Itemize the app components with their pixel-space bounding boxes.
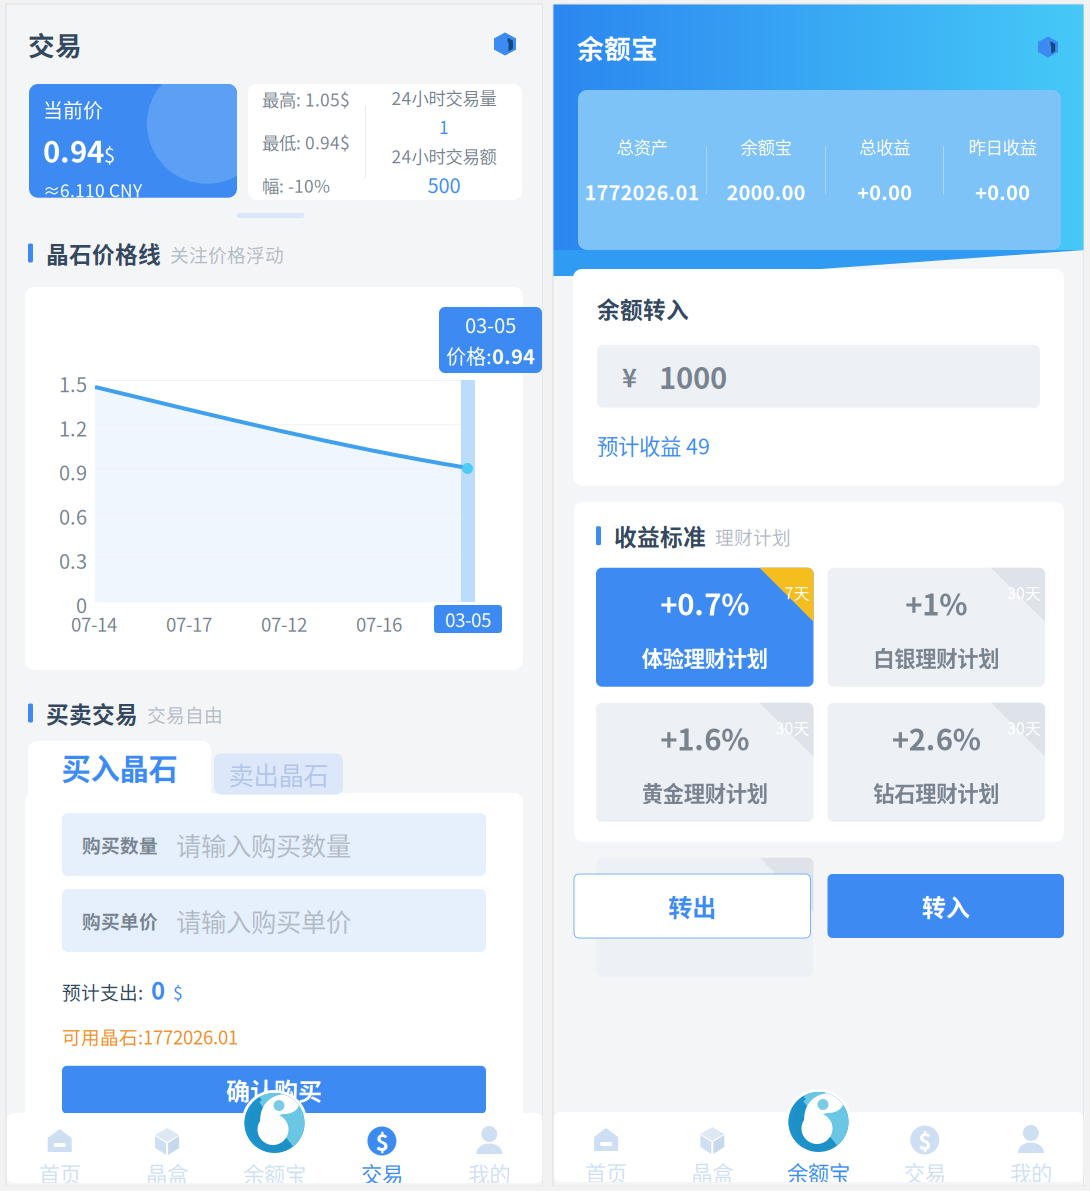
- staticText: 余额宝: [740, 134, 791, 159]
- staticText: 30天: [1007, 716, 1041, 739]
- staticText: 卖出晶石: [228, 756, 328, 792]
- staticText: 总收益: [859, 134, 910, 159]
- staticText: 07-16: [356, 610, 402, 637]
- staticText: +1.6%: [660, 716, 749, 759]
- staticText: 请输入购买单价: [176, 902, 351, 939]
- staticText: 确认购买: [226, 1072, 322, 1107]
- staticText: 24小时交易额: [391, 143, 496, 168]
- staticText: 买入晶石: [61, 746, 177, 788]
- button[interactable]: 确认购买: [62, 1066, 486, 1114]
- staticText: 首页: [585, 1157, 627, 1188]
- staticText: 交易: [361, 1158, 403, 1189]
- staticText: 可用晶石:1772026.01: [62, 1023, 238, 1050]
- staticText: 最高: 1.05$: [262, 86, 350, 111]
- button[interactable]: 我的: [436, 1113, 543, 1183]
- staticText: 黄金理财计划: [642, 777, 768, 808]
- staticText: 昨日收益: [968, 134, 1036, 159]
- staticText: 转入: [922, 889, 970, 923]
- button[interactable]: 晶盒: [659, 1112, 765, 1182]
- staticText: 理财计划: [715, 523, 791, 550]
- staticText: 晶石价格线: [46, 237, 161, 269]
- staticText: 幅: -10%: [262, 172, 330, 198]
- staticText: 1: [439, 114, 449, 139]
- staticText: +2.6%: [892, 716, 981, 759]
- staticText: 0.9: [59, 457, 87, 486]
- button[interactable]: +1%: [827, 568, 1045, 687]
- staticText: 0.3: [59, 546, 87, 575]
- button[interactable]: 首页: [553, 1112, 659, 1182]
- staticText: 转出: [668, 889, 716, 923]
- button[interactable]: +0.7%: [596, 568, 813, 687]
- staticText: 1.2: [59, 413, 87, 442]
- staticText: 购买单价: [82, 907, 158, 934]
- staticText: 余额宝: [243, 1158, 306, 1189]
- staticText: 晶盒: [691, 1157, 733, 1188]
- button[interactable]: +1.6%: [596, 703, 813, 822]
- staticText: 0.6: [59, 502, 87, 531]
- staticText: 1.5: [59, 369, 87, 398]
- staticText: 0.94: [43, 129, 104, 171]
- staticText: 收益标准: [614, 519, 706, 552]
- button[interactable]: 余额宝: [765, 1112, 872, 1182]
- staticText: 首页: [39, 1158, 81, 1189]
- staticText: 0.94: [492, 341, 535, 370]
- staticText: 关注价格浮动: [170, 240, 284, 267]
- staticText: 24小时交易量: [391, 85, 496, 110]
- staticText: 钻石理财计划: [873, 777, 999, 808]
- staticText: 晶盒: [146, 1158, 188, 1189]
- button[interactable]: 转入: [827, 874, 1064, 938]
- staticText: 买卖交易: [46, 697, 138, 729]
- staticText: 购买数量: [82, 831, 158, 858]
- staticText: 预计收益 49: [597, 430, 710, 461]
- button[interactable]: 首页: [6, 1113, 113, 1183]
- staticText: 请输入购买数量: [176, 826, 351, 863]
- staticText: 0: [76, 590, 87, 619]
- button[interactable]: 晶盒: [113, 1113, 221, 1183]
- staticText: 我的: [1010, 1157, 1052, 1188]
- staticText: $: [104, 139, 115, 168]
- staticText: 体验理财计划: [642, 642, 768, 673]
- staticText: ≈6.110 CNY: [43, 177, 142, 202]
- staticText: 500: [427, 170, 460, 199]
- button[interactable]: +2.6%: [827, 703, 1045, 822]
- staticText: 30天: [775, 716, 809, 739]
- staticText: +10%: [665, 896, 744, 938]
- staticText: 交易: [28, 25, 82, 63]
- staticText: +1%: [905, 581, 967, 624]
- staticText: 1000: [659, 355, 727, 398]
- staticText: $: [918, 1124, 931, 1156]
- staticText: 余额宝: [787, 1157, 850, 1188]
- button[interactable]: 转出: [574, 874, 810, 938]
- staticText: $: [375, 1125, 388, 1157]
- button[interactable]: +10%: [596, 858, 813, 977]
- staticText: 预计支出:: [62, 978, 143, 1005]
- staticText: 最低: 0.94$: [262, 129, 350, 155]
- staticText: +0.00: [857, 177, 912, 206]
- button[interactable]: 买入晶石: [28, 741, 211, 793]
- staticText: 07-14: [71, 610, 117, 637]
- button[interactable]: 我的: [978, 1112, 1084, 1182]
- staticText: 07-17: [166, 610, 212, 637]
- staticText: +0.00: [975, 177, 1030, 206]
- staticText: +0.7%: [660, 581, 749, 624]
- staticText: ¥: [622, 358, 637, 395]
- staticText: 当前价: [43, 95, 103, 124]
- staticText: 30天: [775, 871, 809, 894]
- staticText: 余额转入: [597, 292, 689, 325]
- staticText: 价格:: [446, 341, 492, 370]
- button[interactable]: $: [872, 1112, 978, 1182]
- staticText: 余额宝: [577, 28, 658, 66]
- button[interactable]: 卖出晶石: [214, 746, 343, 787]
- staticText: $: [173, 980, 183, 1005]
- staticText: 总资产: [616, 134, 667, 159]
- staticText: 1772026.01: [584, 177, 699, 206]
- staticText: 03-05: [465, 310, 516, 339]
- staticText: 07-12: [261, 610, 307, 637]
- staticText: 2000.00: [726, 177, 805, 206]
- button[interactable]: 余额宝: [221, 1113, 328, 1183]
- staticText: 交易自由: [147, 700, 223, 727]
- staticText: 0: [151, 972, 165, 1007]
- button[interactable]: $: [328, 1113, 436, 1183]
- staticText: 03-05: [445, 605, 491, 632]
- staticText: 交易: [904, 1157, 946, 1188]
